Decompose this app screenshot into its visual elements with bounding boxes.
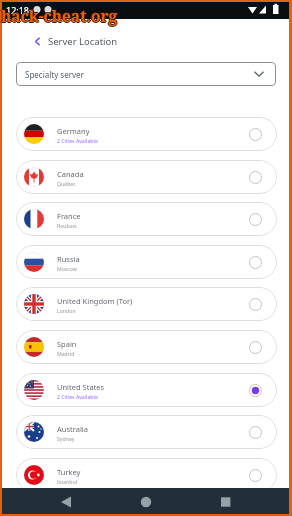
staticText: 2 Cities Available [57,137,98,144]
staticText: 12:18 [6,4,30,16]
staticText: hack-cheat.org [0,5,117,26]
staticText: France [57,211,81,221]
staticText: 2 Cities Available [57,393,98,400]
staticText: London [57,307,76,314]
staticText: Server Location [48,35,118,48]
staticText: Istanbul [57,478,77,485]
button[interactable]: Turkey [16,458,277,492]
staticText: hack-cheat.org [1,6,118,27]
staticText: hack-cheat.org [2,5,119,26]
button[interactable]: United Kingdom (Tor) [16,287,277,321]
button[interactable]: Canada [16,160,277,194]
staticText: hack-cheat.org [1,5,118,26]
staticText: Specialty server [25,69,84,80]
staticText: Moscow [57,265,77,272]
staticText: Sydney [57,435,75,442]
button[interactable]: Specialty server [16,62,276,86]
button[interactable]: Australia [16,415,277,449]
staticText: Québec [57,180,76,187]
button[interactable]: Server Location [33,34,118,49]
button[interactable]: Spain [16,330,277,364]
staticText: United States [57,382,105,392]
staticText: Madrid [57,350,75,357]
staticText: Turkey [57,467,81,477]
button[interactable]: France [16,202,277,236]
staticText: Spain [57,339,77,349]
staticText: Roubaix [57,222,77,229]
button[interactable]: Russia [16,245,277,279]
staticText: hack-cheat.org [1,4,118,25]
staticText: Russia [57,254,80,264]
button[interactable]: Germany [16,117,277,151]
staticText: Australia [57,424,88,434]
staticText: United Kingdom (Tor) [57,296,133,306]
staticText: Germany [57,126,90,136]
button[interactable]: United States [16,373,277,407]
staticText: Canada [57,169,84,179]
